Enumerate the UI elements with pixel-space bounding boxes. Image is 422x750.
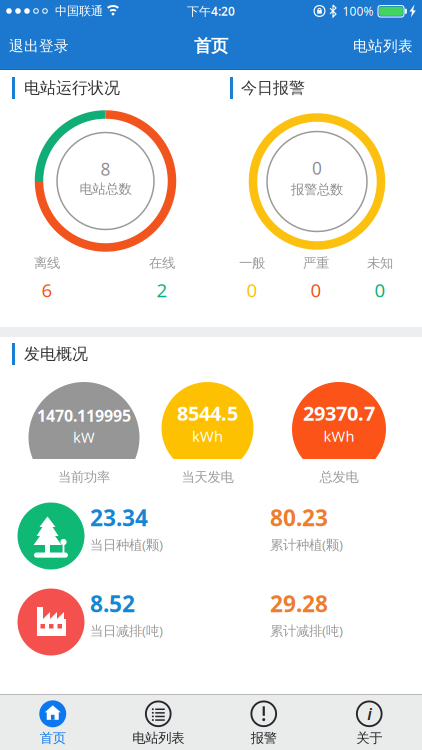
staticText: 0 [310,278,321,302]
button[interactable]: i [317,697,421,749]
staticText: 累计减排(吨) [270,622,343,639]
button[interactable]: 退出登录 [9,37,69,55]
button[interactable]: 报警 [212,697,316,749]
staticText: 电站运行状况 [24,78,120,98]
staticText: 0 [312,156,322,179]
staticText: 当日种植(颗) [90,536,163,553]
staticText: 首页 [40,730,66,746]
staticText: 电站列表 [353,37,413,55]
staticText: 电站列表 [132,730,184,746]
staticText: 23.34 [90,502,148,532]
staticText: 6 [41,278,52,302]
staticText: 当前功率 [58,469,110,485]
staticText: 29370.7 [303,400,375,426]
staticText: 8 [100,157,110,180]
staticText: 2 [156,278,167,302]
staticText: 总发电 [319,469,358,485]
staticText: 29.28 [270,588,328,618]
staticText: 报警总数 [291,181,343,198]
staticText: kWh [323,426,354,446]
staticText: 报警 [251,730,277,746]
staticText: 今日报警 [241,78,305,98]
staticText: i [367,703,372,724]
staticText: 100% [342,3,373,19]
staticText: 未知 [367,255,393,271]
staticText: 电站总数 [79,181,131,197]
staticText: 当天发电 [181,469,233,485]
staticText: 在线 [149,255,175,271]
staticText: 1470.119995 [37,405,131,426]
staticText: 首页 [194,35,228,57]
staticText: 下午4:20 [187,3,235,19]
staticText: 8544.5 [177,400,238,426]
button[interactable]: 电站列表 [106,697,210,749]
staticText: 发电概况 [24,344,88,364]
staticText: 关于 [356,730,382,746]
staticText: kW [73,427,95,447]
staticText: 0 [246,278,257,302]
staticText: 8.52 [90,588,135,618]
staticText: 累计种植(颗) [270,536,343,553]
button[interactable]: 首页 [1,697,105,749]
staticText: 0 [374,278,385,302]
staticText: 当日减排(吨) [90,622,163,639]
staticText: kWh [192,426,223,446]
staticText: 一般 [239,255,265,271]
staticText: 退出登录 [9,37,69,55]
button[interactable]: 电站列表 [353,37,413,55]
staticText: 离线 [34,255,60,271]
staticText: 80.23 [270,502,328,532]
staticText: 严重 [303,255,329,271]
staticText: 中国联通 [55,4,103,18]
